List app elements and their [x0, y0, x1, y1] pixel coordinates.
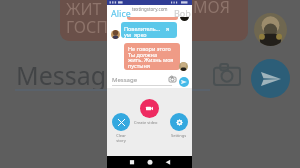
- button[interactable]: Send: [179, 77, 189, 87]
- staticText: Alice: [111, 7, 131, 19]
- staticText: ГОСП: [66, 16, 108, 38]
- button[interactable]: Create video: [140, 99, 159, 118]
- staticText: пустыня: [128, 62, 150, 69]
- staticText: Settings: [171, 133, 187, 138]
- button[interactable]: Settings: [170, 113, 188, 131]
- button[interactable]: Clear story: [112, 113, 130, 131]
- staticText: ЖИТ: [66, 0, 102, 20]
- staticText: Message: [16, 58, 121, 92]
- staticText: Ты должна: [128, 51, 157, 58]
- staticText: Create video: [134, 120, 158, 125]
- staticText: Clear story: [115, 133, 127, 143]
- staticText: Message: [112, 76, 138, 84]
- staticText: Bob: [174, 7, 191, 19]
- staticText: Повелитель… я: [124, 25, 170, 32]
- staticText: ум ярко: [124, 31, 147, 38]
- staticText: МОЯ: [193, 0, 230, 18]
- staticText: Не говори этого: [128, 45, 171, 52]
- staticText: textingstory.com: [132, 6, 168, 12]
- staticText: жить. Жизнь моя: [128, 56, 174, 63]
